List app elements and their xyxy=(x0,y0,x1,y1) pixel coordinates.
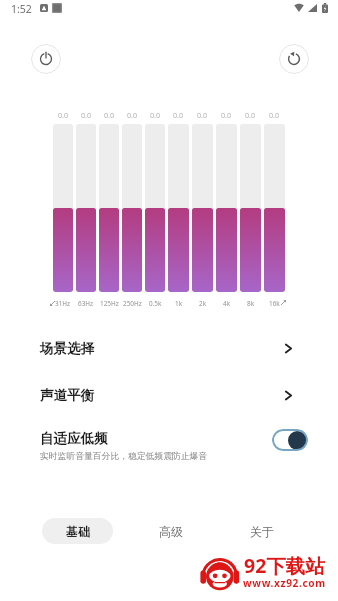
staticText: 125Hz xyxy=(100,299,119,308)
staticText: 0.0 xyxy=(150,110,161,120)
staticText: 0.0 xyxy=(197,110,208,120)
button[interactable]: 声道平衡 xyxy=(0,372,338,418)
button[interactable]: Band 16k xyxy=(264,124,285,292)
staticText: 0.0 xyxy=(173,110,184,120)
button[interactable]: 基础 xyxy=(42,518,113,544)
staticText: 16k xyxy=(269,299,280,308)
staticText: 0.0 xyxy=(81,110,92,120)
staticText: 0.0 xyxy=(221,110,232,120)
button[interactable]: Band 125Hz xyxy=(99,124,119,292)
button[interactable]: Band 4k xyxy=(216,124,237,292)
staticText: 实时监听音量百分比，稳定低频震防止爆音 xyxy=(40,451,208,462)
button[interactable]: Band 0.5k xyxy=(145,124,165,292)
button[interactable]: Band 1k xyxy=(168,124,189,292)
staticText: 基础 xyxy=(66,524,90,539)
staticText: 0.0 xyxy=(245,110,256,120)
staticText: 0.0 xyxy=(58,110,69,120)
button[interactable]: Reset xyxy=(279,44,309,74)
staticText: 高级 xyxy=(159,524,183,539)
staticText: 0.0 xyxy=(104,110,115,120)
button[interactable]: Band 8k xyxy=(240,124,261,292)
button[interactable]: Band 31Hz xyxy=(53,124,73,292)
staticText: 关于 xyxy=(250,524,274,539)
staticText: 1k xyxy=(175,299,183,308)
staticText: 92下载站 xyxy=(244,552,325,579)
staticText: 0.5k xyxy=(149,299,162,308)
button[interactable]: Adaptive bass toggle xyxy=(272,429,308,451)
staticText: 8k xyxy=(247,299,255,308)
staticText: 250Hz xyxy=(123,299,142,308)
staticText: www.xz92.com xyxy=(243,576,326,590)
button[interactable]: 自适应低频 xyxy=(0,422,338,470)
staticText: 1:52 xyxy=(11,2,32,16)
staticText: 场景选择 xyxy=(40,340,94,357)
staticText: 自适应低频 xyxy=(40,430,108,447)
staticText: 63Hz xyxy=(78,299,94,308)
staticText: 0.0 xyxy=(127,110,138,120)
staticText: 声道平衡 xyxy=(40,387,94,404)
button[interactable]: 场景选择 xyxy=(0,325,338,371)
button[interactable]: Band 2k xyxy=(192,124,213,292)
button[interactable]: 关于 xyxy=(234,518,290,544)
button[interactable]: Band 250Hz xyxy=(122,124,142,292)
button[interactable]: Power xyxy=(31,44,61,74)
staticText: 31Hz xyxy=(55,299,71,308)
staticText: 0.0 xyxy=(269,110,280,120)
button[interactable]: 高级 xyxy=(143,518,199,544)
staticText: 4k xyxy=(223,299,231,308)
button[interactable]: Band 63Hz xyxy=(76,124,96,292)
staticText: 2k xyxy=(199,299,207,308)
